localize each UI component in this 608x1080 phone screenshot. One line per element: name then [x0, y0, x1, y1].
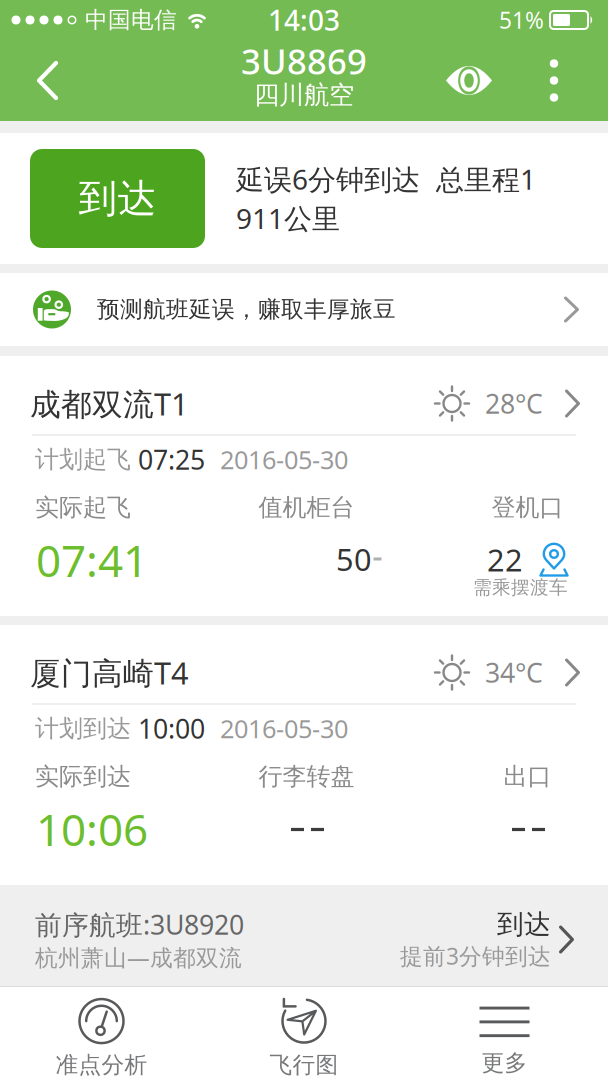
button[interactable]: 成都双流T1 — [0, 356, 608, 434]
button[interactable]: 到达 — [30, 149, 205, 248]
staticText: 成都双流T1 — [30, 383, 189, 424]
button[interactable]: 前序航班:3U8920 — [0, 885, 608, 986]
staticText: 登机口 — [491, 493, 563, 522]
staticText: 实际起飞 — [35, 493, 131, 522]
button[interactable]: 准点分析 — [0, 987, 203, 1080]
staticText: 28°C — [485, 386, 543, 421]
staticText: 提前3分钟到达 — [400, 941, 551, 971]
staticText: 34°C — [485, 655, 543, 690]
staticText: 911公里 — [236, 199, 340, 237]
staticText: 杭州萧山—成都双流 — [35, 942, 242, 972]
staticText: 值机柜台 — [258, 493, 354, 522]
staticText: 需乘摆渡车 — [473, 576, 568, 599]
staticText: 计划到达 — [35, 714, 131, 743]
staticText: 3U8869 — [241, 38, 367, 84]
button[interactable]: 预测航班延误，赚取丰厚旅豆 — [0, 273, 608, 346]
staticText: 到达 — [497, 908, 551, 941]
staticText: 前序航班:3U8920 — [35, 907, 244, 942]
staticText: 2016-05-30 — [220, 712, 348, 745]
staticText: 07:25 — [138, 442, 205, 477]
staticText: 22 — [487, 539, 523, 580]
staticText: 四川航空 — [254, 79, 354, 111]
staticText: 厦门高崎T4 — [30, 652, 189, 693]
staticText: 07:41 — [36, 531, 148, 589]
staticText: 出口 — [503, 762, 551, 791]
staticText: 延误6分钟到达 总里程1 — [236, 160, 536, 197]
button[interactable]: View route — [445, 65, 493, 95]
button[interactable]: 飞行图 — [203, 987, 405, 1080]
button[interactable]: More options — [493, 58, 608, 102]
button[interactable]: Back — [0, 60, 59, 100]
button[interactable]: Map — [537, 541, 571, 577]
staticText: 中国电信 — [85, 6, 177, 34]
button[interactable]: 更多 — [405, 987, 608, 1080]
staticText: 计划起飞 — [35, 445, 131, 474]
staticText: 到达 — [78, 175, 156, 222]
button[interactable]: 厦门高崎T4 — [0, 625, 608, 703]
staticText: 2016-05-30 — [220, 443, 348, 476]
staticText: 实际到达 — [35, 762, 131, 791]
staticText: 50 — [336, 539, 372, 579]
staticText: 10:06 — [36, 800, 148, 858]
staticText: 51% — [499, 5, 544, 35]
staticText: 准点分析 — [55, 1051, 147, 1079]
staticText: 更多 — [481, 1049, 527, 1077]
staticText: 飞行图 — [269, 1051, 338, 1079]
staticText: 预测航班延误，赚取丰厚旅豆 — [97, 296, 396, 323]
staticText: 14:03 — [268, 1, 340, 39]
staticText: 10:00 — [138, 711, 205, 746]
staticText: 行李转盘 — [258, 762, 354, 791]
